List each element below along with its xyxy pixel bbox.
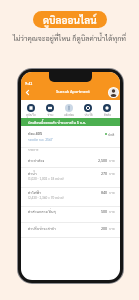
staticText: 500 [101,209,108,214]
staticText: บาท [109,159,115,163]
button[interactable]: ค่าน้ำ [21,168,120,184]
staticText: ดูบิลออนไลน์ [43,13,97,26]
staticText: ค่าเช่าห้อง [28,158,45,163]
staticText: Suesuk Apartment [56,89,90,94]
staticText: ดูบิล/ใบ [26,113,36,117]
button[interactable]: แจ้งซ่อม [61,104,77,117]
staticText: (1,020 - 1,002 = 18 หน่วย) [28,177,64,181]
staticText: ค่าน้ำ [28,171,37,176]
staticText: 9:41 [25,81,33,86]
staticText: ค่าไฟฟ้า [28,190,42,195]
button[interactable]: ดูบิล/ใบ [23,104,39,117]
staticText: ติดต่อ [104,113,111,117]
staticText: ปกติ [108,132,115,136]
staticText: ไม่ว่าคุณจะอยู่ที่ไหน ก็ดูบิลค่าน้ำได้ทุ… [0,33,139,42]
button[interactable]: ดูบิลออนไลน์ [33,11,107,28]
staticText: รอบบิล ก.ย. 2567 [28,137,53,141]
staticText: 2,500 [98,158,108,163]
button[interactable]: Profile [108,87,119,98]
staticText: แจ้งซ่อม [64,113,74,117]
staticText: 840 [101,190,108,195]
staticText: บาท [109,172,115,176]
staticText: ค่าปรับชำระล่าช้า [28,226,56,231]
button[interactable]: ค่าปรับชำระล่าช้า [21,223,120,236]
button[interactable]: ค่าส่วนกลาง/อื่นๆ [21,206,120,219]
button[interactable]: ติดต่อ [99,104,115,117]
staticText: บาท [109,191,115,195]
staticText: ค่าส่วนกลาง/อื่นๆ [28,209,56,214]
button[interactable]: ค่าไฟฟ้า [21,187,120,203]
staticText: 270 [101,171,108,176]
staticText: (2,430 - 2,360 = 70 หน่วย) [28,196,64,200]
button[interactable]: บิลเดือนนี้ออกแล้ว ชำระภายใน 5 ก.ย. [21,118,120,126]
staticText: บาท [109,227,115,231]
staticText: บาท [109,210,115,214]
button[interactable]: ชำระ [42,104,58,117]
staticText: บิลเดือนนี้ออกแล้ว ชำระภายใน 5 ก.ย. [28,120,87,125]
staticText: 200 [101,226,108,231]
staticText: ประวัติ [84,113,93,117]
button[interactable]: ค่าเช่าห้อง [21,155,120,168]
button[interactable]: ประวัติ [80,104,96,117]
staticText: รายการ [28,147,39,151]
button[interactable]: Back [23,88,32,97]
staticText: ชำระ [47,113,54,117]
staticText: ห้อง 405 [28,131,43,136]
